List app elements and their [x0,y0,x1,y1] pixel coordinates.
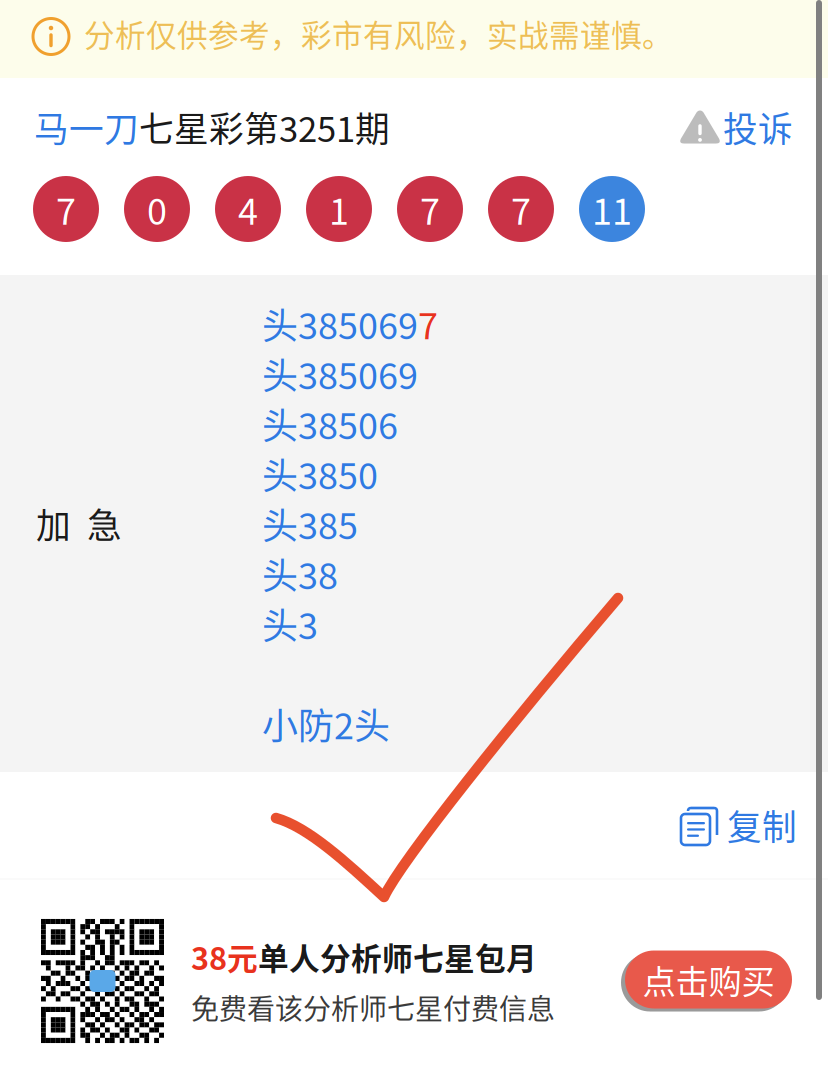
staticText: 38元 [191,934,258,979]
button[interactable]: 投诉 [679,102,793,152]
staticText: 小防2头 [262,697,390,749]
button[interactable]: 马一刀 [34,102,139,152]
button[interactable]: 点击购买 [621,950,792,1011]
staticText: 七星彩第3251期 [139,102,390,152]
staticText: 7 [418,297,438,349]
staticText: 11 [592,183,632,235]
staticText: 复制 [727,800,797,850]
button[interactable]: 复制 [681,800,797,850]
staticText: 7 [56,183,76,235]
staticText: 头385069 [262,297,418,349]
staticText: 头38506 [262,397,398,449]
staticText: 免费看该分析师七星付费信息 [191,987,555,1027]
staticText: 1 [329,183,349,235]
staticText: 头3850 [262,447,378,499]
staticText: 分析仅供参考，彩市有风险，实战需谨慎。 [84,11,673,56]
staticText: 4 [238,183,258,235]
staticText: 7 [420,183,440,235]
staticText: 头3 [262,597,318,649]
staticText: 0 [147,183,167,235]
staticText: 单人分析师七星包月 [258,934,537,979]
staticText: 头385 [262,497,358,549]
staticText: 头385069 [262,347,418,399]
staticText: 马一刀 [34,102,139,152]
staticText: 点击购买 [642,955,774,1004]
staticText: 加 急 [36,498,122,549]
staticText: 头38 [262,547,338,599]
staticText: 7 [511,183,531,235]
staticText: 投诉 [723,102,793,152]
